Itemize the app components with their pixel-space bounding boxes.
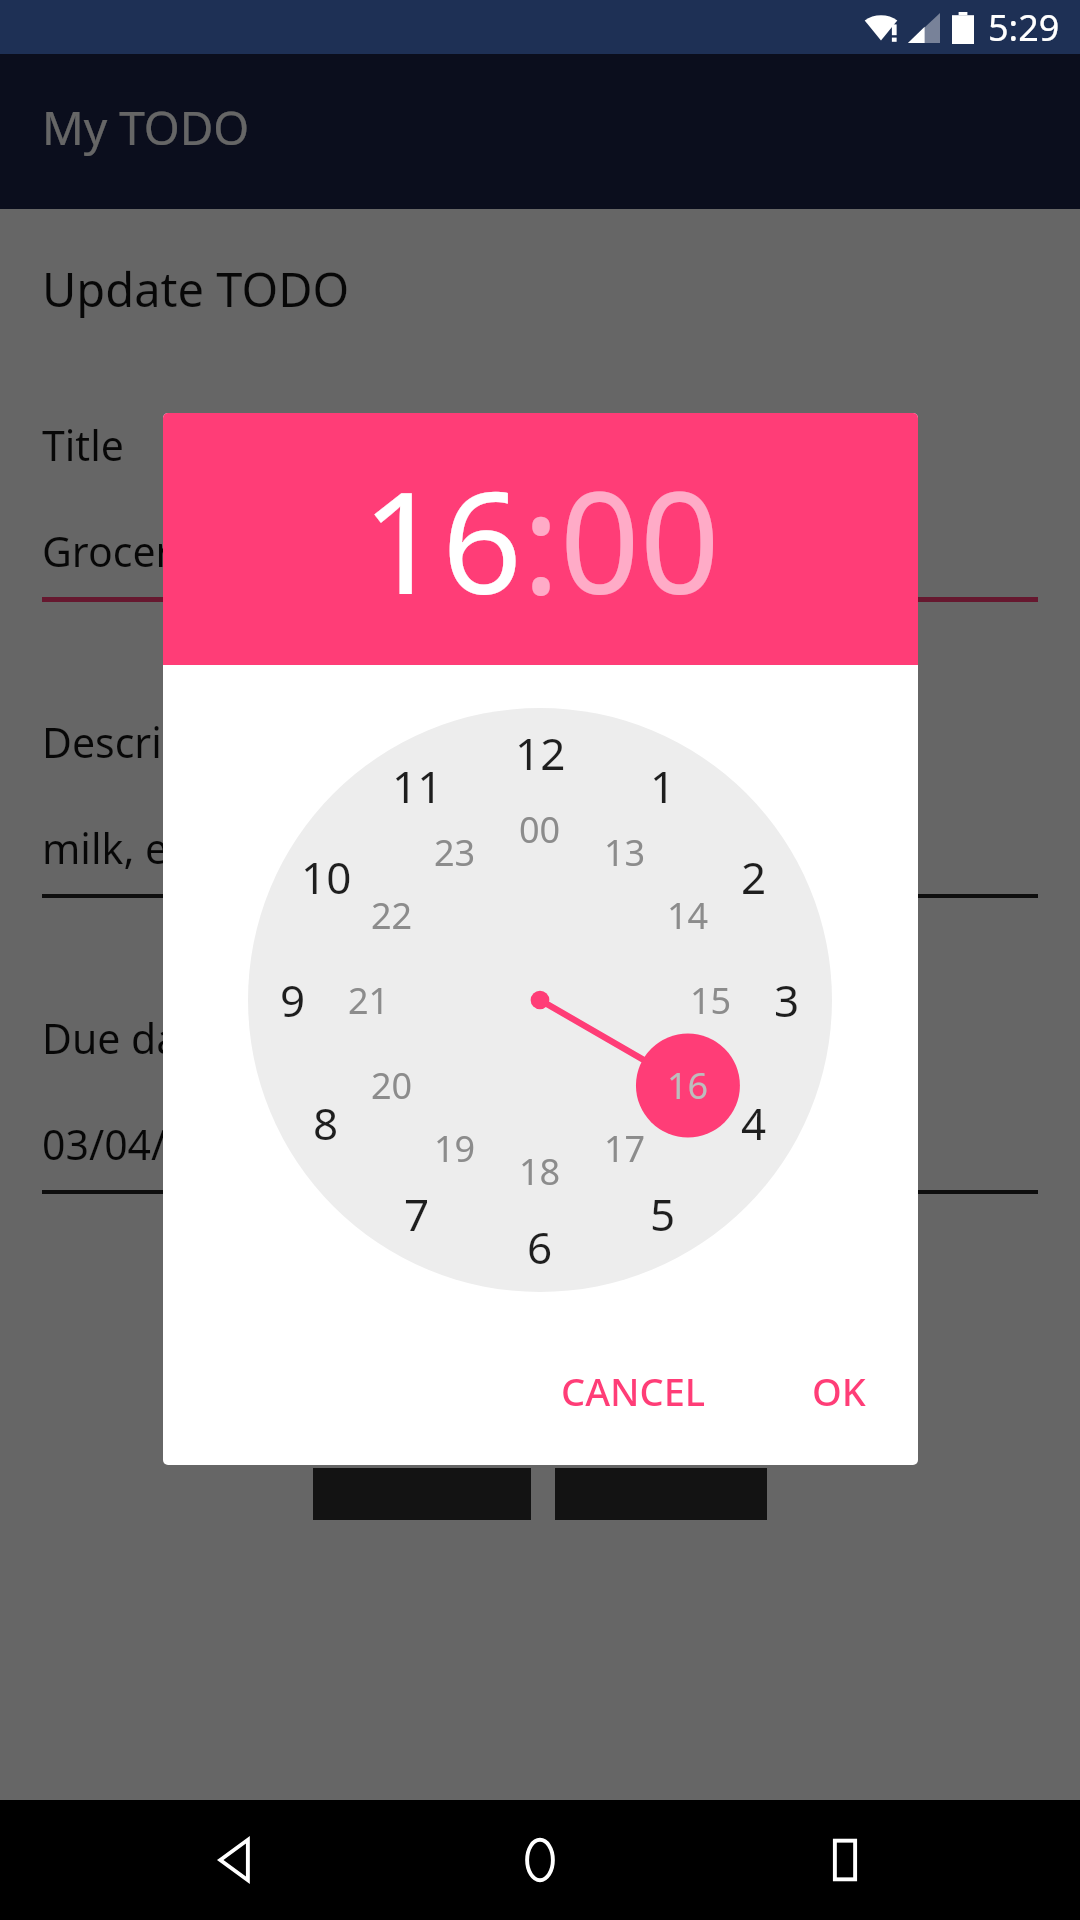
staticText: 3	[774, 970, 800, 1030]
staticText: 5	[650, 1184, 676, 1244]
staticText: milk, eggs	[42, 820, 239, 876]
staticText: Description	[42, 714, 263, 770]
button[interactable]: Recents	[775, 1800, 915, 1920]
staticText: 20	[371, 1061, 413, 1110]
staticText: Update TODO	[42, 257, 350, 321]
staticText: 16:00	[362, 444, 720, 635]
button[interactable]: CANCEL	[537, 1339, 730, 1443]
button[interactable]: OK	[788, 1339, 890, 1443]
staticText: 4	[741, 1093, 767, 1153]
staticText: My TODO	[42, 96, 250, 159]
button[interactable]: Back	[165, 1800, 305, 1920]
staticText: 14	[667, 891, 709, 940]
staticText: 10	[301, 847, 352, 907]
button[interactable]: Clock face, hour 16 selected	[248, 708, 832, 1292]
staticText: 22	[371, 891, 413, 940]
staticText: 13	[604, 828, 646, 877]
staticText: 03/04/2019	[42, 1116, 261, 1172]
staticText: 8	[313, 1093, 339, 1153]
button[interactable]: 16:00	[163, 413, 918, 665]
staticText: 21	[348, 976, 390, 1025]
staticText: Grocery	[42, 523, 194, 579]
staticText: 15	[690, 976, 732, 1025]
staticText: 19	[434, 1124, 476, 1173]
staticText: 1	[650, 756, 676, 816]
staticText: 23	[434, 828, 476, 877]
staticText: Title	[42, 417, 124, 473]
staticText: 17	[604, 1124, 646, 1173]
staticText: 00	[519, 805, 561, 854]
staticText: 6	[527, 1217, 553, 1277]
staticText: 16	[667, 1061, 709, 1110]
staticText: 9	[280, 970, 306, 1030]
staticText: 7	[404, 1184, 430, 1244]
staticText: 5:29	[988, 3, 1060, 52]
button[interactable]: Home	[470, 1800, 610, 1920]
staticText: 11	[392, 756, 443, 816]
staticText: 18	[519, 1147, 561, 1196]
staticText: Due date	[42, 1010, 218, 1066]
staticText: 2	[741, 847, 767, 907]
staticText: 12	[515, 723, 566, 783]
